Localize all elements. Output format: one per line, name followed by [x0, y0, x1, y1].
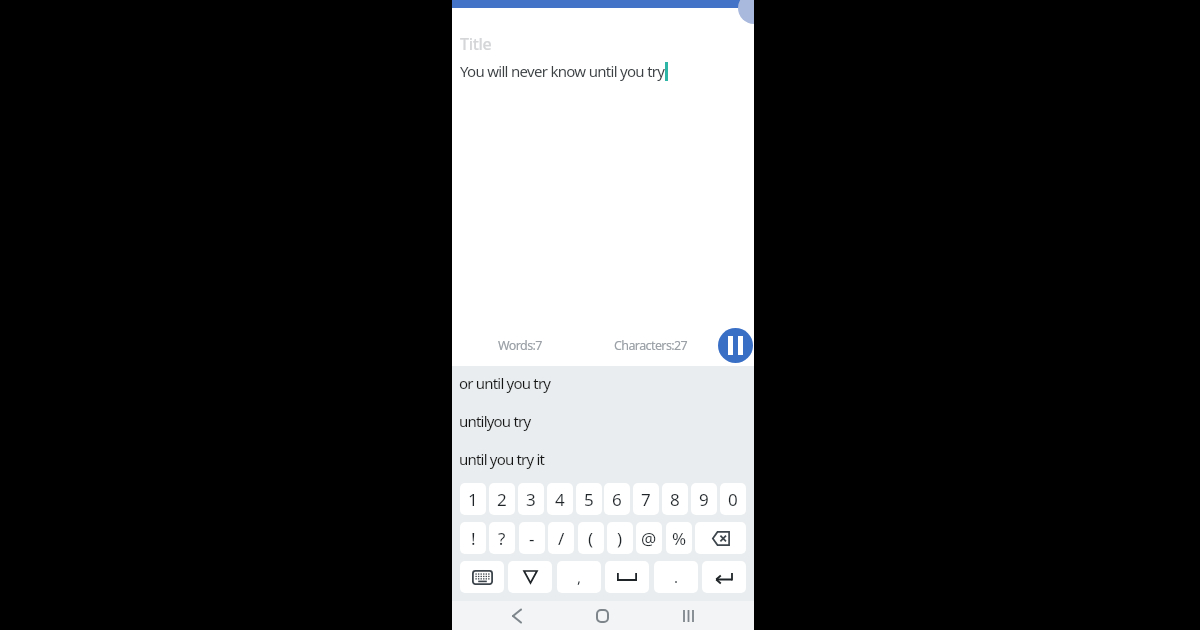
button[interactable]: (	[578, 522, 604, 554]
button[interactable]	[497, 601, 537, 630]
staticText: 5	[584, 488, 594, 511]
staticText: 8	[670, 488, 680, 511]
staticText: (	[588, 527, 594, 550]
button[interactable]: or until you try	[452, 366, 754, 404]
button[interactable]: 7	[633, 483, 659, 515]
button[interactable]: 9	[691, 483, 717, 515]
button[interactable]: 0	[720, 483, 746, 515]
staticText: )	[617, 527, 623, 550]
staticText: ?	[498, 527, 506, 550]
staticText: or until you try	[459, 373, 551, 393]
button[interactable]: !	[460, 522, 486, 554]
staticText: 1	[468, 488, 478, 511]
button[interactable]	[508, 561, 552, 593]
button[interactable]: untilyou try	[452, 404, 754, 442]
staticText: -	[529, 527, 535, 550]
staticText: You will never know until you try	[460, 61, 665, 81]
button[interactable]	[668, 601, 708, 630]
button[interactable]	[460, 561, 504, 593]
staticText: 9	[699, 488, 709, 511]
staticText: untilyou try	[459, 411, 531, 431]
button[interactable]: 5	[576, 483, 602, 515]
staticText: /	[558, 527, 565, 550]
button[interactable]: until you try it	[452, 442, 754, 480]
button[interactable]: -	[519, 522, 545, 554]
button[interactable]: /	[548, 522, 574, 554]
staticText: 6	[612, 488, 622, 511]
button[interactable]: 2	[489, 483, 515, 515]
staticText: 3	[526, 488, 536, 511]
button[interactable]: 1	[460, 483, 486, 515]
staticText: .	[674, 567, 679, 587]
staticText: Words:7	[498, 337, 542, 354]
staticText: Characters:27	[614, 337, 688, 354]
button[interactable]: %	[666, 522, 692, 554]
button[interactable]: 3	[518, 483, 544, 515]
staticText: ,	[577, 567, 582, 587]
button[interactable]	[718, 328, 753, 363]
button[interactable]	[702, 561, 746, 593]
staticText: @	[641, 527, 657, 550]
button[interactable]: 8	[662, 483, 688, 515]
button[interactable]: @	[636, 522, 662, 554]
staticText: Title	[460, 33, 492, 55]
button[interactable]: )	[607, 522, 633, 554]
staticText: 0	[728, 488, 738, 511]
staticText: 4	[555, 488, 565, 511]
button[interactable]	[695, 522, 746, 554]
staticText: %	[672, 527, 687, 550]
button[interactable]: ,	[557, 561, 601, 593]
button[interactable]	[582, 601, 622, 630]
button[interactable]: .	[654, 561, 698, 593]
button[interactable]: ?	[489, 522, 515, 554]
staticText: !	[471, 527, 476, 550]
button[interactable]: 4	[547, 483, 573, 515]
button[interactable]: 6	[604, 483, 630, 515]
staticText: until you try it	[459, 449, 545, 469]
staticText: 7	[641, 488, 651, 511]
button[interactable]	[605, 561, 649, 593]
staticText: 2	[497, 488, 507, 511]
